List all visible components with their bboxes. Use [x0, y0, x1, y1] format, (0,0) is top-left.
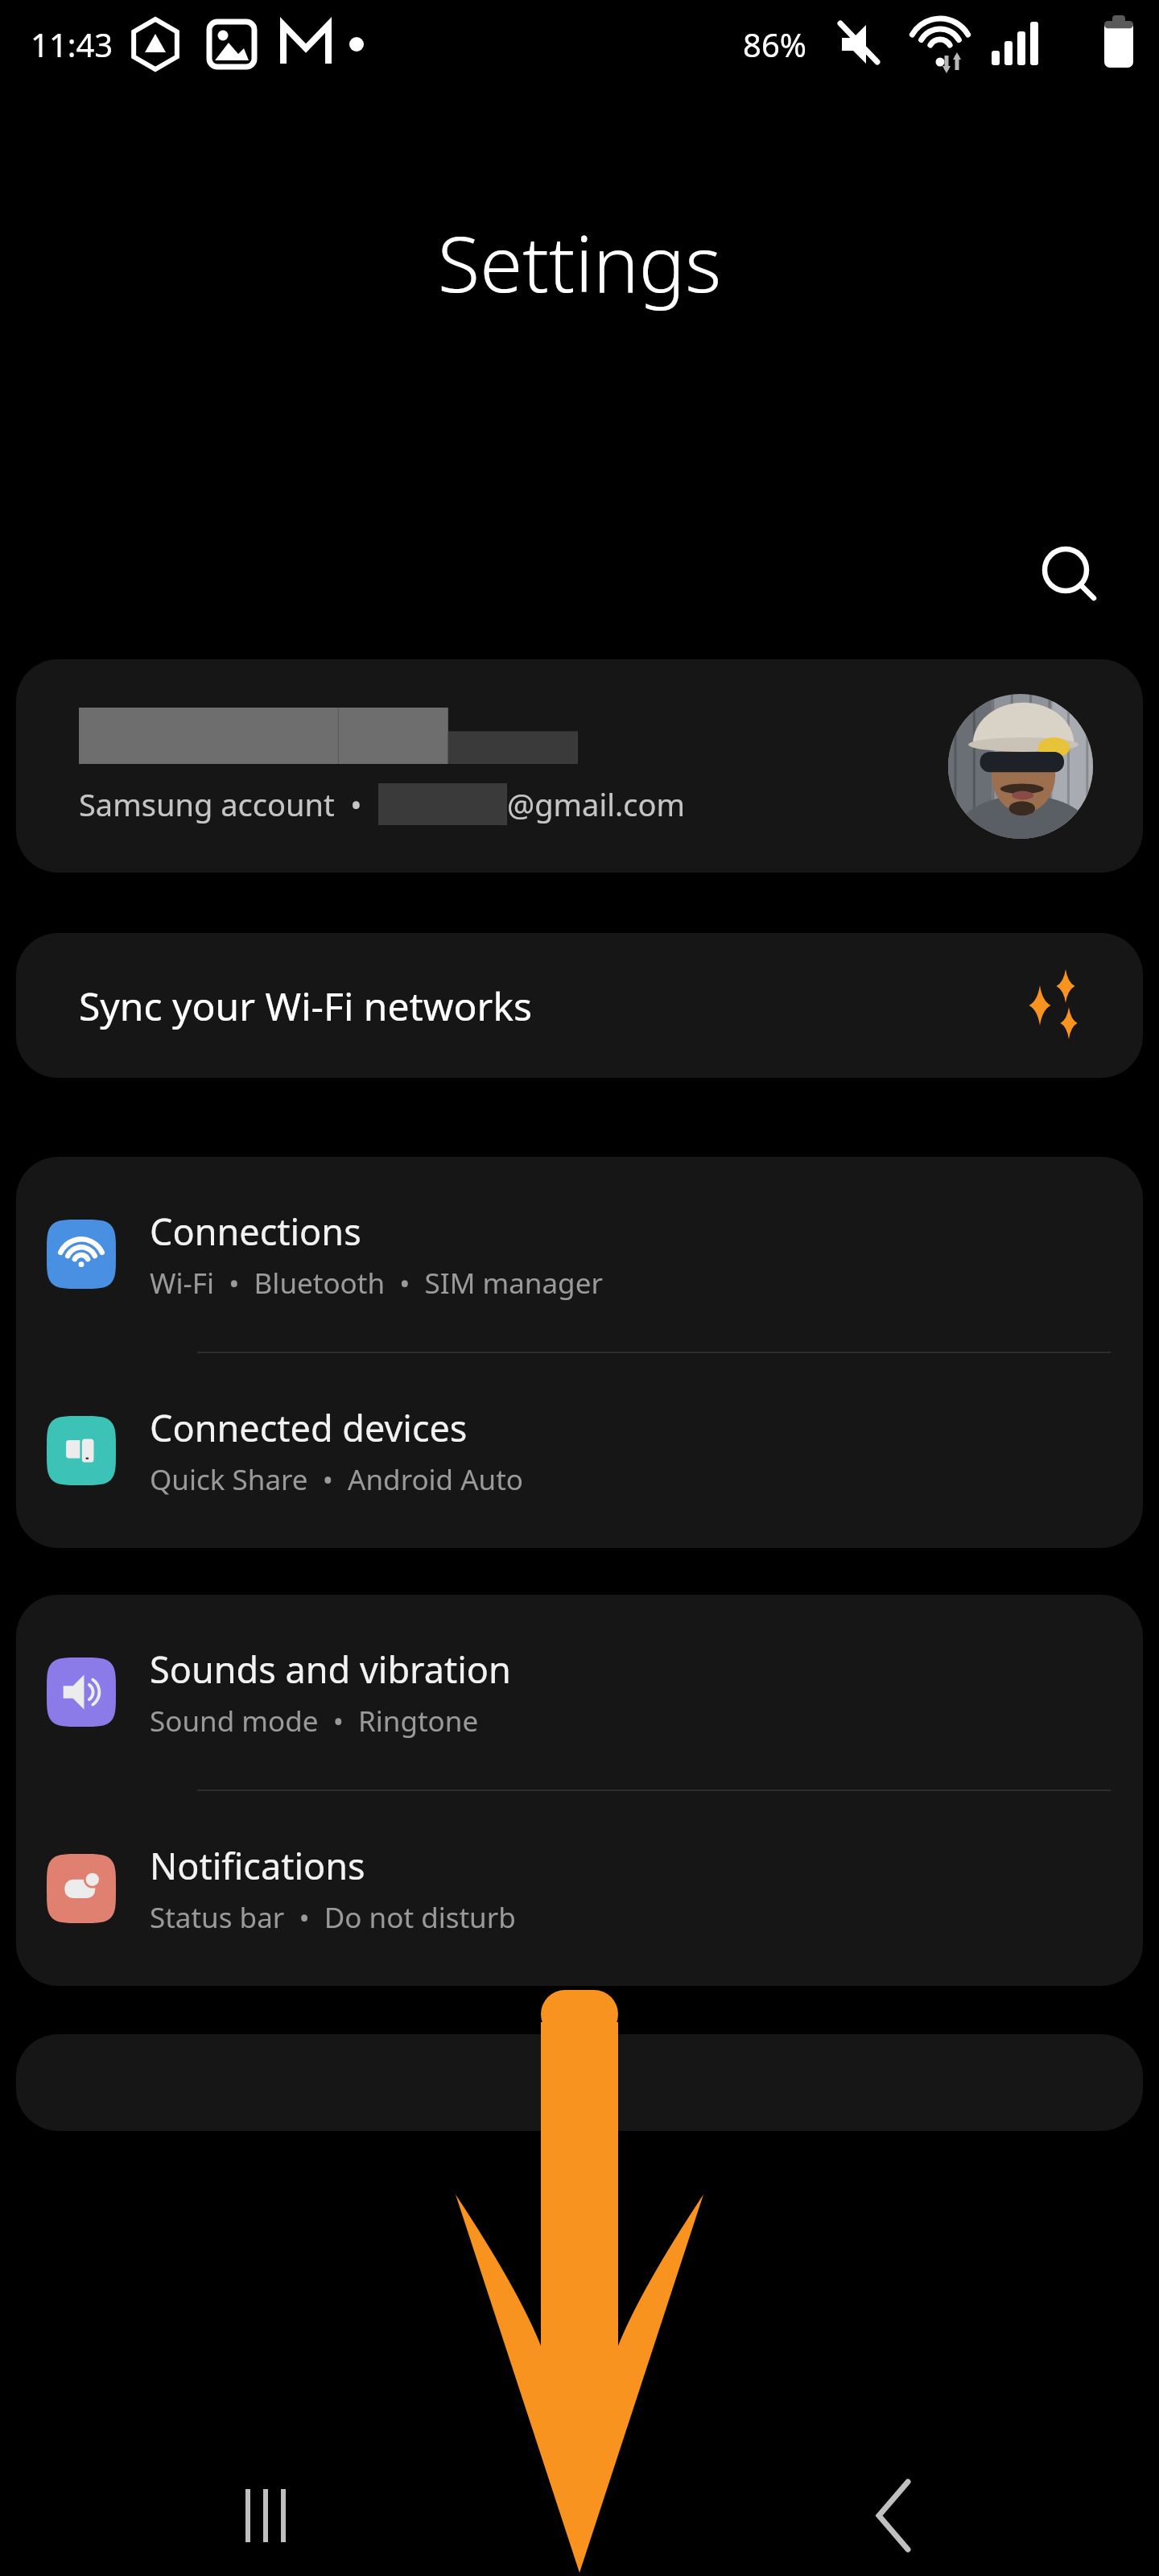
- button[interactable]: Recents: [217, 2467, 314, 2564]
- staticText: Samsung account •: [79, 783, 378, 825]
- staticText: 11:43: [31, 23, 113, 66]
- staticText: Wi-Fi • Bluetooth • SIM manager: [150, 1264, 603, 1302]
- staticText: 86%: [743, 23, 806, 66]
- staticText: Connections: [150, 1207, 361, 1256]
- button[interactable]: Search: [1030, 536, 1111, 617]
- staticText: Quick Share • Android Auto: [150, 1460, 524, 1499]
- staticText: Sounds and vibration: [150, 1645, 511, 1694]
- staticText: Sound mode • Ringtone: [150, 1702, 479, 1740]
- staticText: Notifications: [150, 1841, 365, 1890]
- button[interactable]: Connections: [16, 1157, 1143, 1352]
- staticText: Settings: [0, 209, 1159, 315]
- button[interactable]: Samsung account •: [16, 659, 1143, 873]
- staticText: Sync your Wi-Fi networks: [79, 980, 533, 1032]
- staticText: Status bar • Do not disturb: [150, 1898, 516, 1937]
- staticText: @gmail.com: [507, 783, 685, 825]
- button[interactable]: [16, 2034, 1143, 2131]
- button[interactable]: Notifications: [16, 1791, 1143, 1986]
- button[interactable]: Sounds and vibration: [16, 1595, 1143, 1790]
- button[interactable]: Connected devices: [16, 1353, 1143, 1548]
- button[interactable]: Back: [845, 2467, 942, 2564]
- button[interactable]: Sync your Wi-Fi networks: [16, 933, 1143, 1078]
- staticText: Connected devices: [150, 1403, 468, 1452]
